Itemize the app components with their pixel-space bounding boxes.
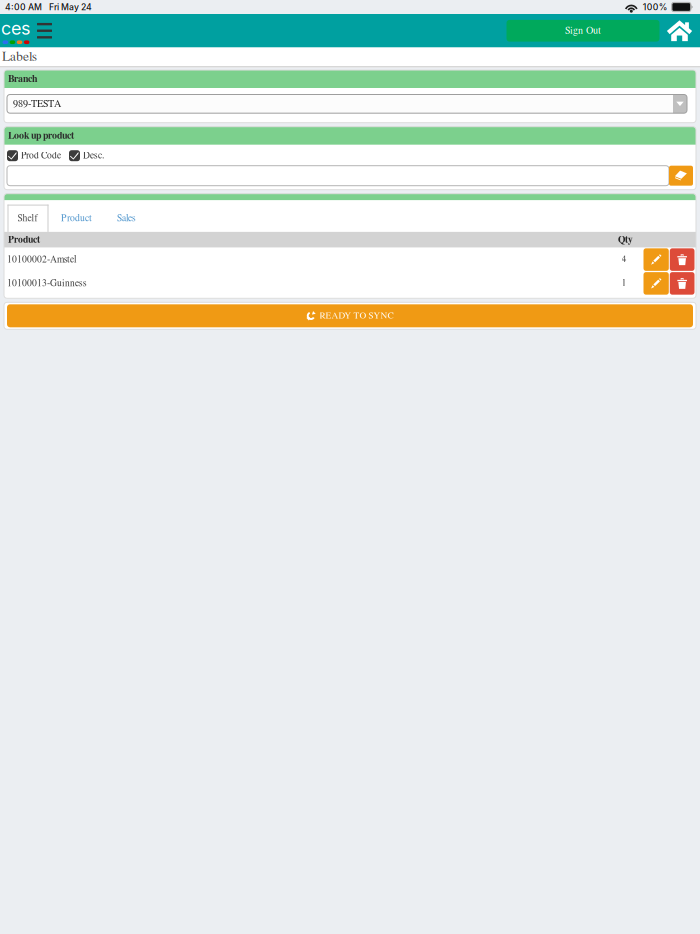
button[interactable]: Shelf xyxy=(7,205,48,232)
staticText: Shelf xyxy=(17,213,38,223)
button[interactable]: CES xyxy=(0,14,31,47)
staticText: ces xyxy=(1,17,31,39)
staticText: Product xyxy=(8,235,40,245)
button[interactable]: Product xyxy=(59,205,93,232)
staticText: 4:00 AM xyxy=(5,2,42,12)
button[interactable]: Sales xyxy=(114,205,138,232)
staticText: 100% xyxy=(643,2,668,12)
button[interactable]: Delete xyxy=(670,248,694,271)
button[interactable]: Edit xyxy=(643,272,669,295)
button[interactable]: Desc. xyxy=(69,150,104,161)
button[interactable]: READY TO SYNC xyxy=(7,304,693,327)
button[interactable]: Home xyxy=(666,20,692,42)
staticText: Desc. xyxy=(83,151,104,160)
button[interactable]: Delete xyxy=(670,272,694,295)
button[interactable]: Prod Code xyxy=(7,150,61,161)
button[interactable]: Edit xyxy=(643,248,669,271)
staticText: Fri May 24 xyxy=(49,2,92,12)
staticText: 10100002-Amstel xyxy=(7,255,76,264)
staticText: 989-TESTA xyxy=(13,99,61,109)
button[interactable]: Sign Out xyxy=(506,20,659,42)
staticText: Qty xyxy=(618,235,633,245)
button[interactable]: Menu xyxy=(36,14,52,47)
staticText: 10100013-Guinness xyxy=(7,279,87,288)
staticText: 4 xyxy=(621,255,626,264)
staticText: Labels xyxy=(2,50,37,63)
staticText: Product xyxy=(61,213,92,223)
button[interactable]: Branch selector xyxy=(7,94,687,113)
staticText: Branch xyxy=(8,74,37,84)
button[interactable]: Clear xyxy=(669,166,693,186)
staticText: Look up product xyxy=(8,131,74,141)
staticText: 1 xyxy=(621,279,626,288)
staticText: Sales xyxy=(117,213,136,223)
staticText: READY TO SYNC xyxy=(319,311,393,320)
staticText: Sign Out xyxy=(565,26,601,36)
staticText: Prod Code xyxy=(21,151,61,160)
